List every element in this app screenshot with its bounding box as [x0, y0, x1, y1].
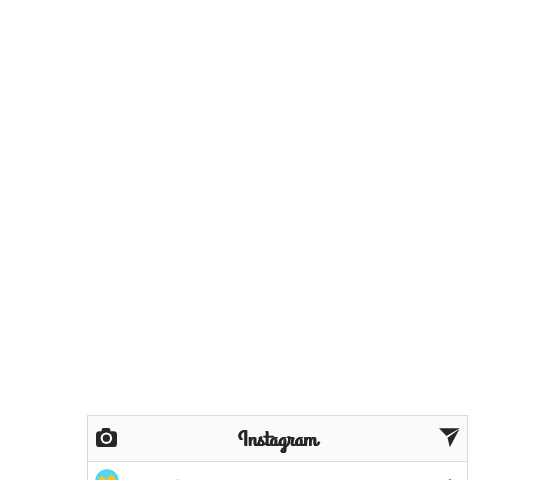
staticText: Instagram	[238, 427, 318, 453]
staticText: Instagram	[238, 427, 318, 453]
staticText: Instagram	[238, 427, 318, 453]
staticText: Instagram	[239, 427, 319, 453]
button[interactable]: Camera	[87, 415, 125, 462]
button[interactable]	[95, 469, 119, 480]
staticText: Instagram	[238, 427, 318, 453]
button[interactable]: More options	[441, 477, 459, 480]
button[interactable]: Direct messages	[430, 415, 468, 462]
